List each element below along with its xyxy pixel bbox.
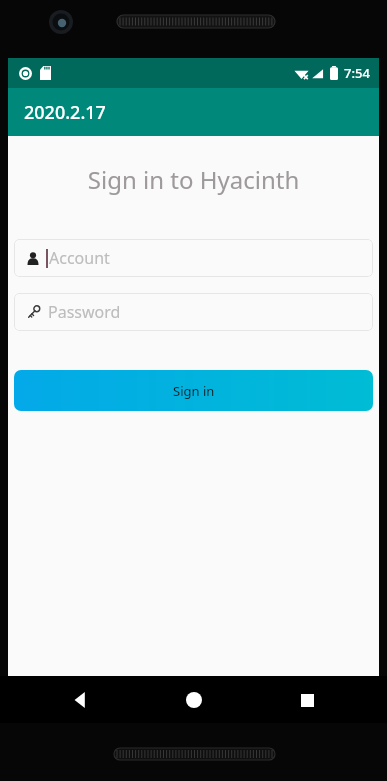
staticText: 2020.2.17	[24, 100, 106, 125]
button[interactable]: Back	[58, 678, 102, 722]
button[interactable]: Home	[172, 678, 216, 722]
staticText: 7:54	[344, 64, 370, 82]
staticText: Password	[48, 301, 121, 323]
staticText: Sign in	[173, 382, 215, 400]
button[interactable]: Sign in	[14, 370, 373, 411]
button[interactable]: Recent apps	[285, 678, 329, 722]
staticText: Account	[49, 247, 110, 269]
button[interactable]: Password	[14, 293, 373, 331]
staticText: Sign in to Hyacinth	[8, 163, 379, 196]
button[interactable]: Account	[14, 239, 373, 277]
